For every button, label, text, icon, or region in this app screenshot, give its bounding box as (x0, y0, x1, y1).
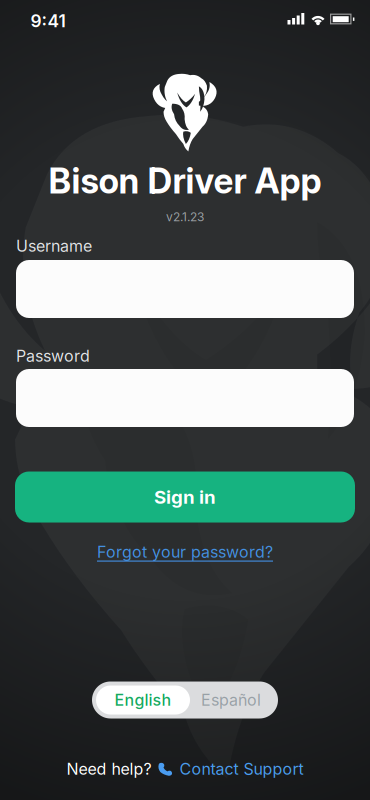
staticText: English (114, 691, 171, 709)
staticText: Bison Driver App (48, 161, 321, 201)
button[interactable]: English (96, 685, 190, 714)
staticText: Username (16, 237, 92, 255)
button[interactable]: Contact Support (157, 760, 303, 778)
staticText: 9:41 (30, 11, 65, 31)
staticText: Password (16, 347, 90, 365)
button[interactable]: Sign in (15, 471, 355, 522)
staticText: Contact Support (179, 760, 303, 778)
staticText: Español (201, 691, 261, 709)
button[interactable] (16, 260, 354, 318)
button[interactable]: Forgot your password? (97, 543, 273, 561)
staticText: Forgot your password? (97, 543, 273, 561)
staticText: Need help? (66, 760, 151, 778)
button[interactable] (16, 369, 354, 427)
button[interactable]: Español (185, 685, 277, 714)
staticText: v2.1.23 (166, 210, 204, 224)
staticText: Sign in (154, 486, 216, 508)
